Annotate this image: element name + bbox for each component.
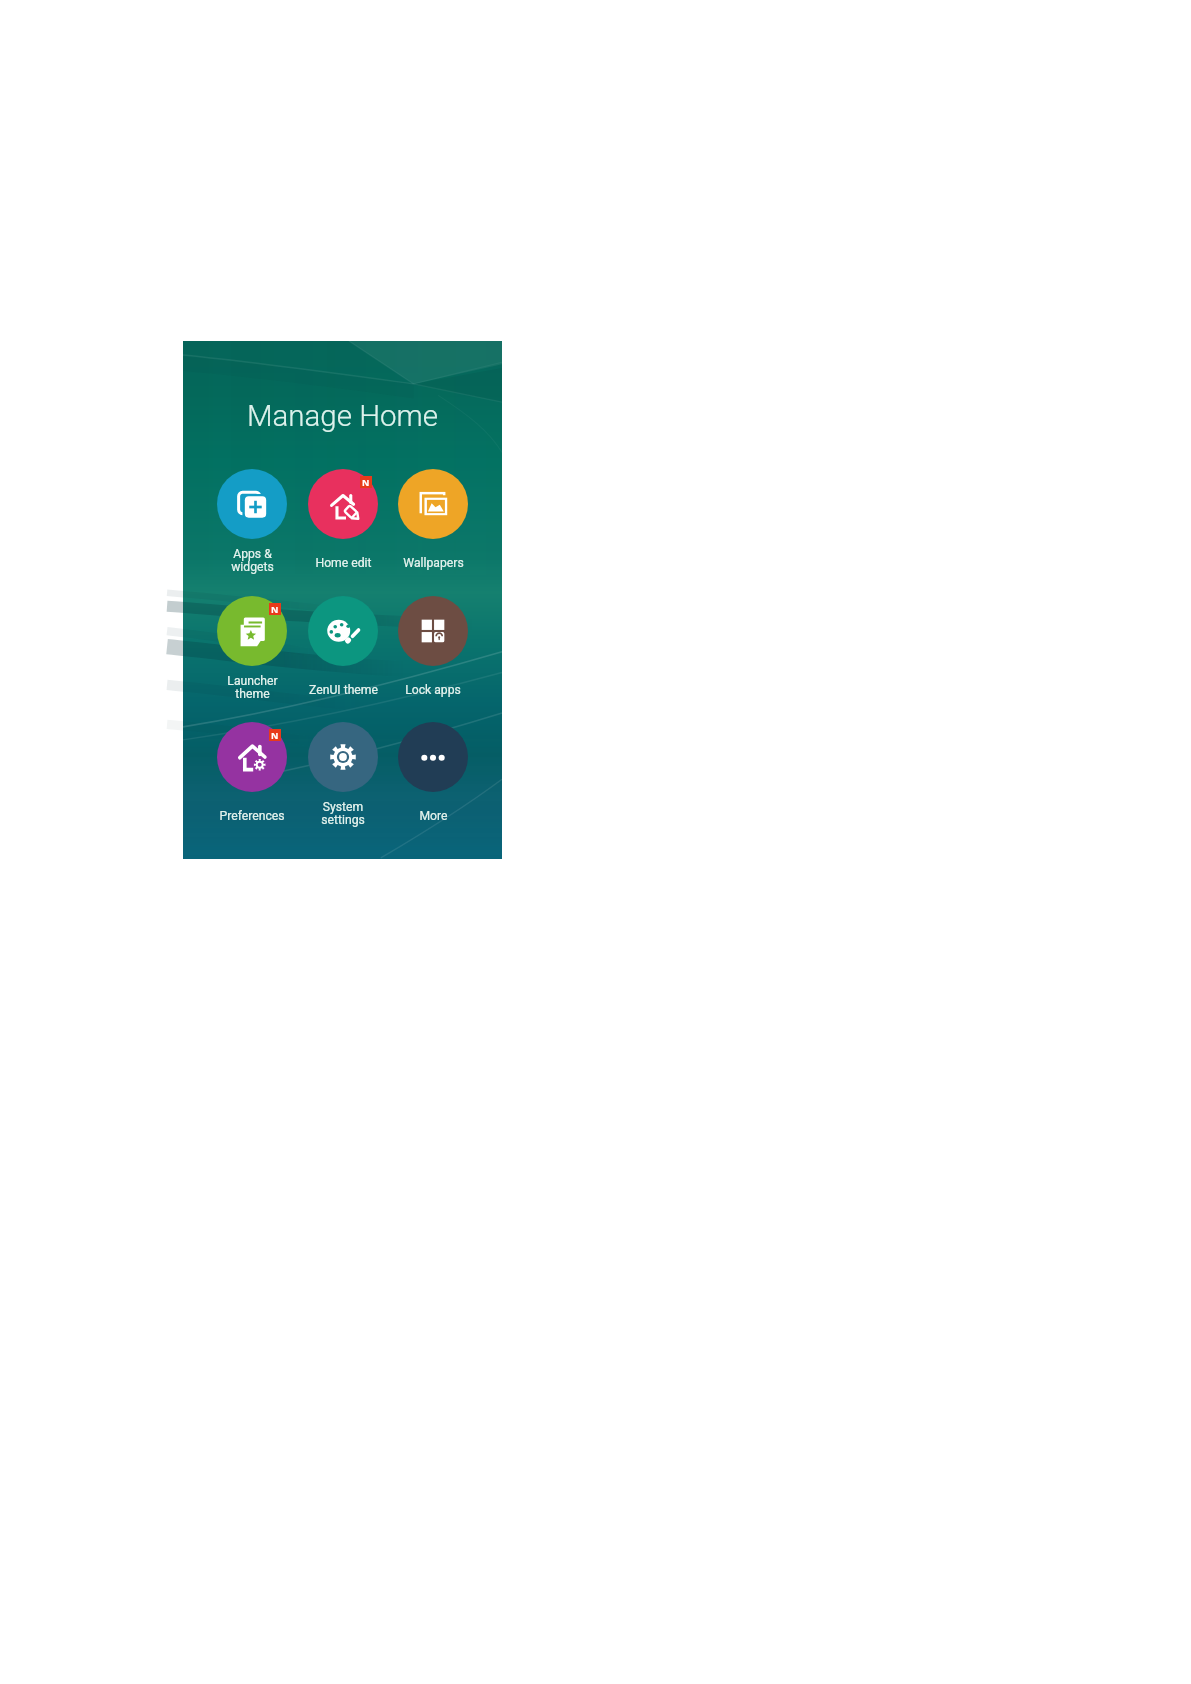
staticText: N bbox=[271, 729, 279, 741]
button[interactable]: Home edit bbox=[300, 465, 386, 579]
button[interactable]: Launcher theme bbox=[209, 592, 295, 706]
staticText: Preferences bbox=[219, 809, 285, 823]
staticText: Home edit bbox=[315, 556, 372, 570]
staticText: Launcher theme bbox=[227, 674, 278, 701]
button[interactable]: Wallpapers bbox=[390, 465, 476, 579]
button[interactable]: Apps and widgets bbox=[209, 465, 295, 579]
staticText: System settings bbox=[321, 800, 365, 827]
staticText: N bbox=[362, 476, 370, 488]
staticText: More bbox=[419, 809, 448, 823]
staticText: ZenUI theme bbox=[309, 683, 378, 697]
staticText: Apps & widgets bbox=[231, 547, 274, 574]
staticText: Manage Home bbox=[247, 399, 438, 434]
button[interactable]: System settings bbox=[300, 718, 386, 832]
button[interactable]: Lock apps bbox=[390, 592, 476, 706]
staticText: Lock apps bbox=[405, 683, 461, 697]
staticText: Wallpapers bbox=[403, 556, 464, 570]
staticText: N bbox=[271, 603, 279, 615]
button[interactable]: ZenUI theme bbox=[300, 592, 386, 706]
button[interactable]: More bbox=[390, 718, 476, 832]
button[interactable]: Preferences bbox=[209, 718, 295, 832]
